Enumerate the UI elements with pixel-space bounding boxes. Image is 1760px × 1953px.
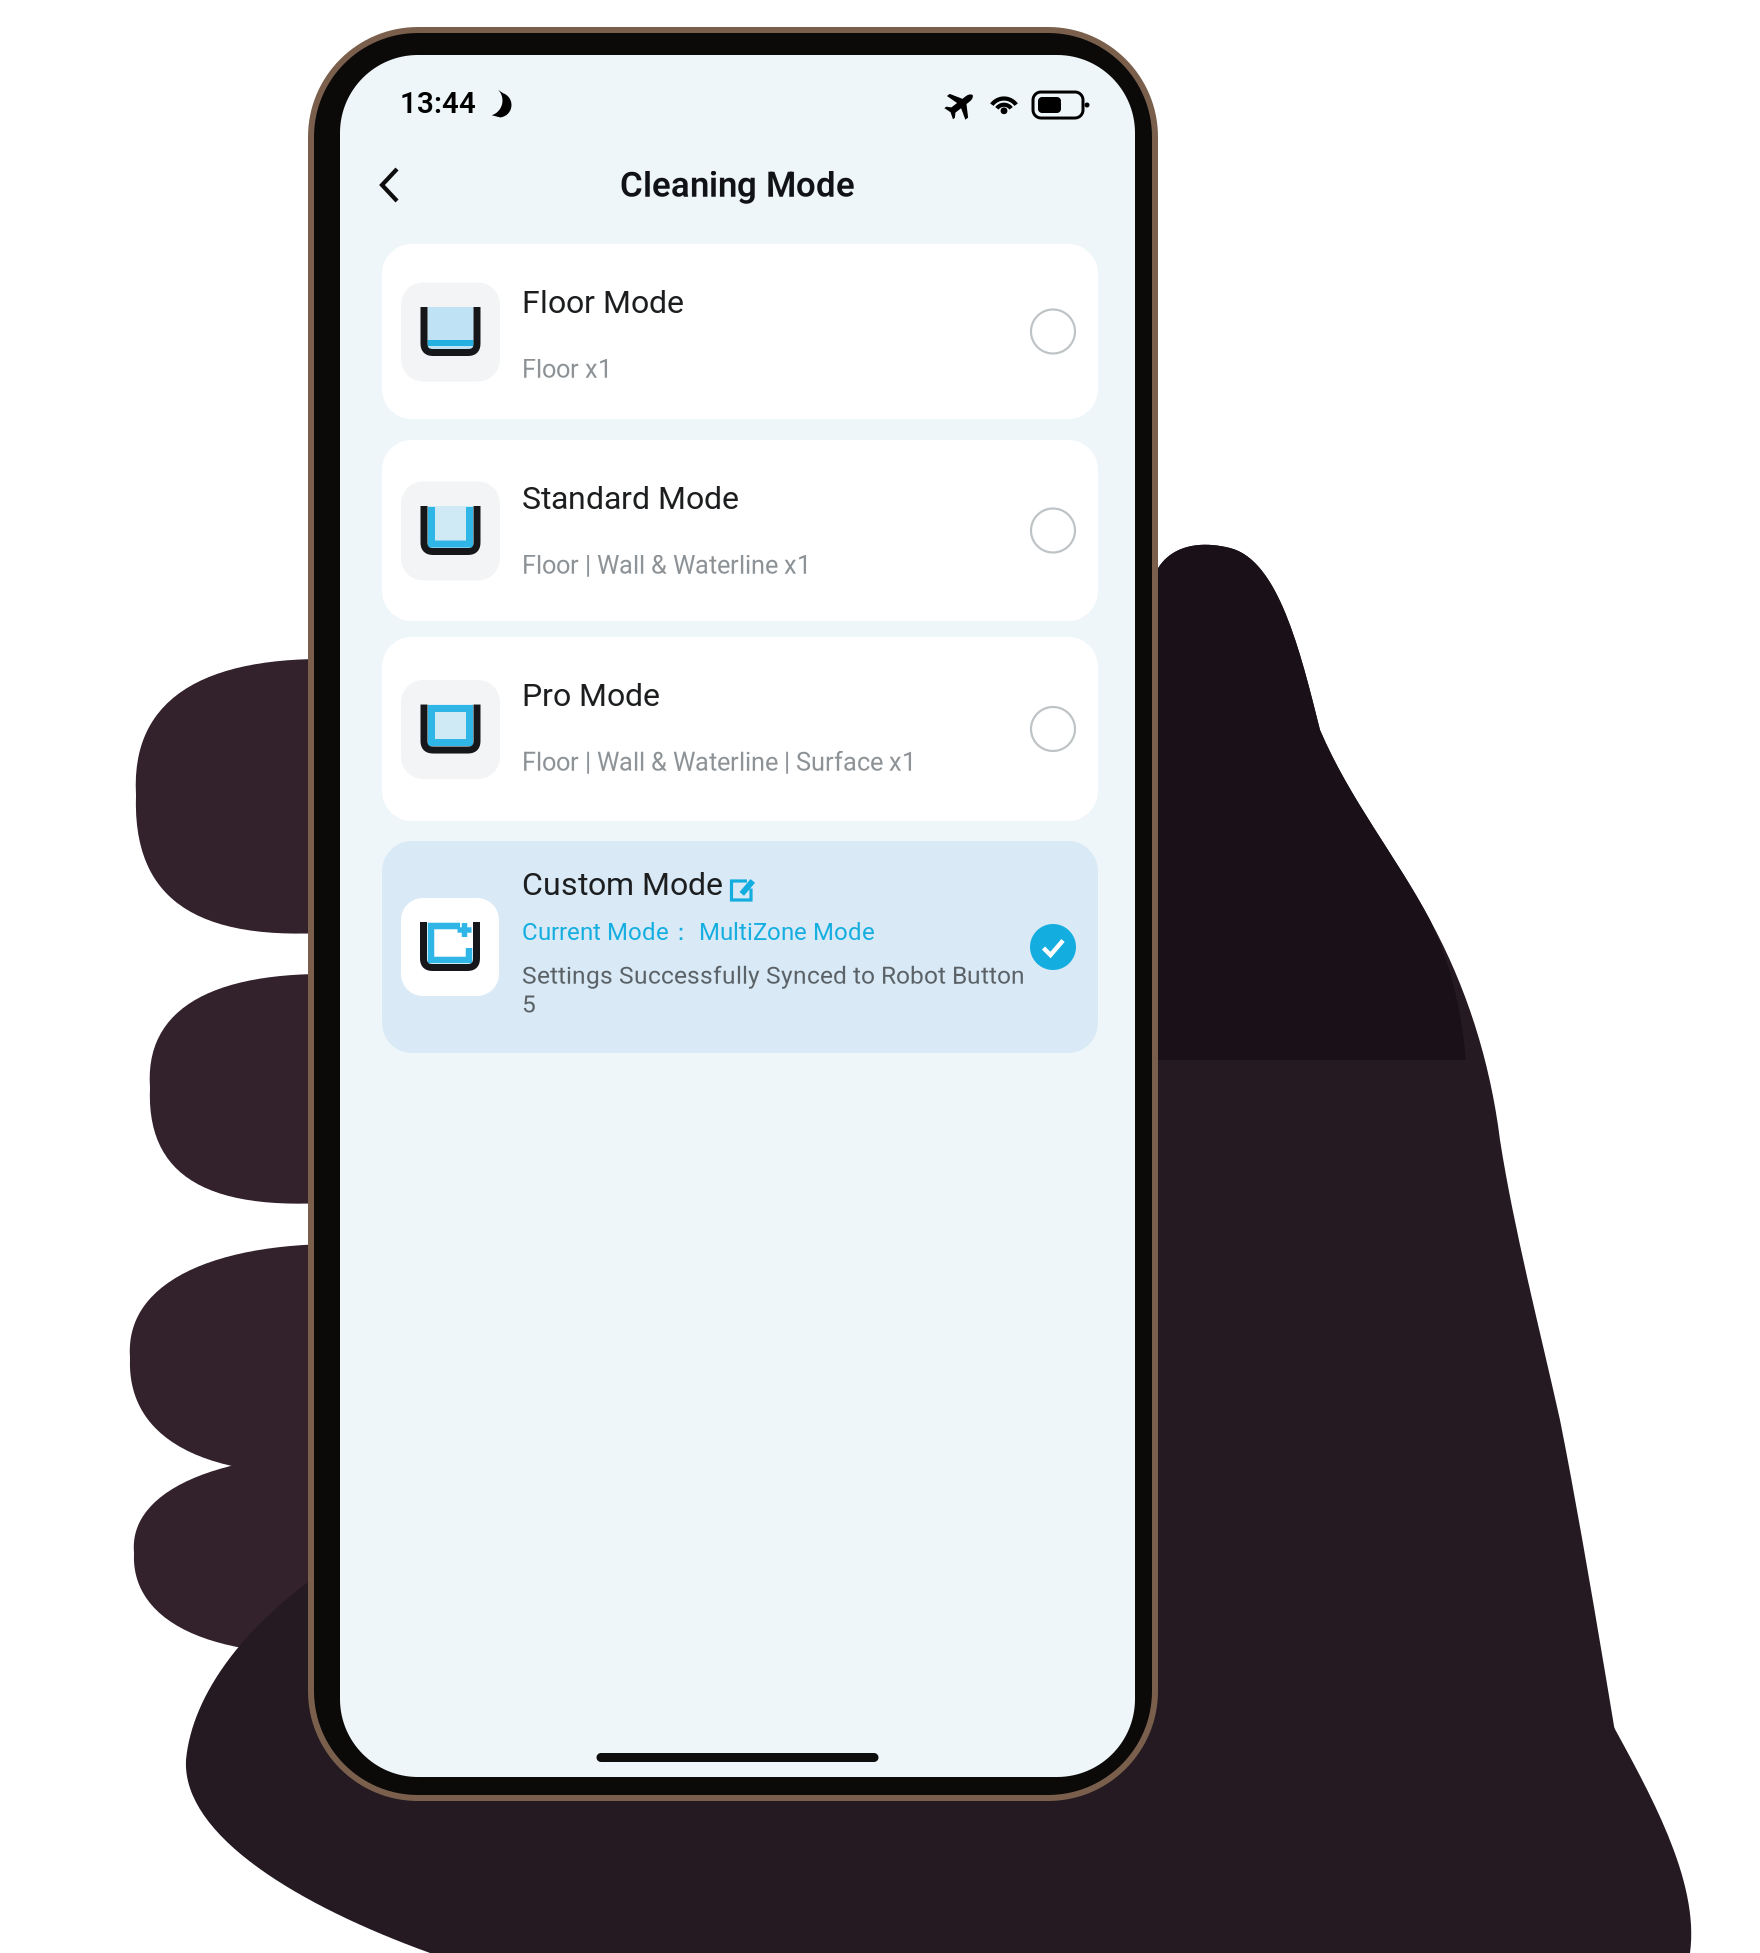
staticText: Floor | Wall & Waterline | Surface x1	[522, 747, 916, 777]
staticText: Standard Mode	[522, 479, 739, 517]
staticText: Floor x1	[522, 354, 612, 384]
staticText: Custom Mode	[522, 865, 723, 903]
staticText: Pro Mode	[522, 676, 660, 714]
button[interactable]: Standard Mode	[382, 440, 1098, 621]
button[interactable]: Back	[362, 157, 418, 213]
staticText: Cleaning Mode	[620, 165, 855, 205]
staticText: Floor | Wall & Waterline x1	[522, 550, 811, 580]
button[interactable]: Custom Mode	[382, 841, 1098, 1053]
staticText: 13:44	[400, 86, 476, 120]
button[interactable]: Pro Mode	[382, 637, 1098, 821]
staticText: Settings Successfully Synced to Robot Bu…	[522, 961, 1025, 1018]
staticText: Floor Mode	[522, 283, 684, 321]
button[interactable]: Floor Mode	[382, 244, 1098, 419]
staticText: Current Mode： MultiZone Mode	[522, 917, 875, 947]
